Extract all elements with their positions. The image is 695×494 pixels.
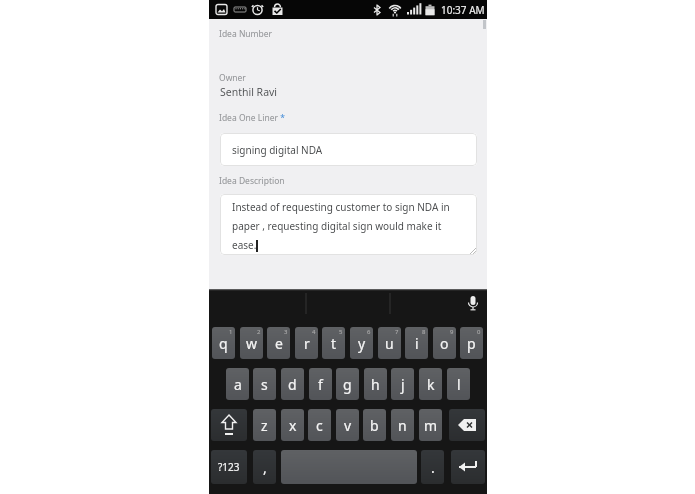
button[interactable] [281,450,417,484]
button[interactable]: q [212,327,235,359]
staticText: 5 [339,328,343,336]
button[interactable] [211,409,247,441]
staticText: i [415,334,419,353]
staticText: 3 [284,328,288,336]
staticText: . [431,458,435,477]
button[interactable]: l [447,368,470,400]
staticText: u [385,334,394,353]
staticText: f [318,375,323,394]
button[interactable]: m [419,409,442,441]
button[interactable] [451,450,485,484]
staticText: Owner [219,72,246,84]
staticText: q [219,334,228,353]
staticText: h [371,375,380,394]
staticText: p [467,334,476,353]
button[interactable]: p [460,327,483,359]
staticText: Instead of requesting customer to sign N… [232,200,450,252]
button[interactable]: signing digital NDA [220,133,477,166]
staticText: 7 [395,328,399,336]
button[interactable]: o [433,327,456,359]
staticText: 1 [229,328,233,336]
staticText: y [358,334,366,353]
button[interactable]: d [281,368,304,400]
staticText: Idea One Liner [219,112,278,124]
button[interactable]: i [405,327,428,359]
staticText: Idea Number [219,28,273,40]
button[interactable]: ?123 [211,450,247,484]
staticText: b [370,416,379,435]
button[interactable]: a [226,368,249,400]
staticText: 9 [450,328,454,336]
staticText: ?123 [218,460,240,474]
button[interactable]: g [336,368,359,400]
staticText: 8 [422,328,426,336]
staticText: 0 [477,328,481,336]
staticText: , [263,458,267,477]
staticText: signing digital NDA [232,143,323,157]
button[interactable]: h [364,368,387,400]
staticText: l [457,375,461,394]
button[interactable]: v [336,409,359,441]
staticText: g [343,375,352,394]
staticText: 10:37 AM [441,3,485,17]
button[interactable]: x [281,409,304,441]
button[interactable]: , [253,450,276,484]
button[interactable]: Instead of requesting customer to sign N… [220,194,477,255]
staticText: d [288,375,297,394]
staticText: 4 [312,328,316,336]
button[interactable]: s [253,368,276,400]
button[interactable]: e [267,327,290,359]
staticText: w [246,334,258,353]
button[interactable]: j [391,368,414,400]
button[interactable]: w [240,327,263,359]
button[interactable] [449,409,485,441]
button[interactable]: u [378,327,401,359]
button[interactable]: r [295,327,318,359]
staticText: Idea Description [219,175,285,187]
staticText: m [424,416,438,435]
button[interactable]: z [253,409,276,441]
staticText: Senthil Ravi [220,85,278,99]
button[interactable]: f [309,368,332,400]
staticText: t [331,334,337,353]
staticText: k [427,375,435,394]
staticText: 6 [367,328,371,336]
button[interactable]: k [419,368,442,400]
staticText: * [278,112,285,124]
staticText: z [261,416,268,435]
staticText: n [398,416,407,435]
button[interactable]: y [350,327,373,359]
button[interactable]: c [308,409,331,441]
staticText: v [344,416,352,435]
staticText: s [261,375,268,394]
staticText: o [440,334,449,353]
staticText: r [304,334,310,353]
staticText: 2 [257,328,261,336]
button[interactable]: b [363,409,386,441]
staticText: j [401,375,405,394]
staticText: c [316,416,323,435]
button[interactable]: . [421,450,444,484]
staticText: e [275,334,283,353]
staticText: a [234,375,242,394]
staticText: x [289,416,297,435]
button[interactable]: n [391,409,414,441]
button[interactable]: t [322,327,345,359]
